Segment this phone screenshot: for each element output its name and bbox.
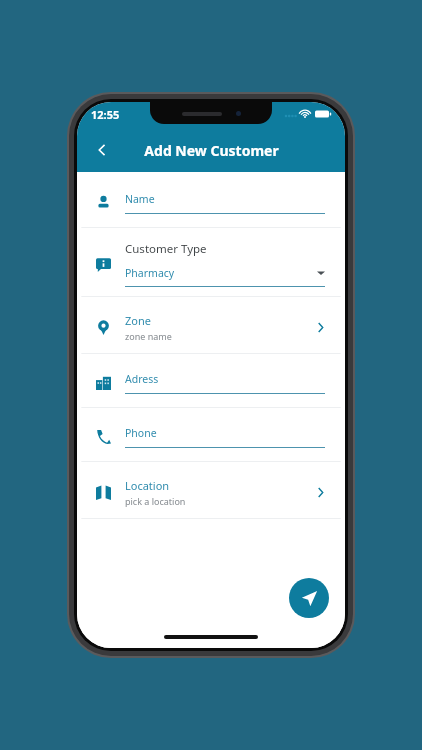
staticText: Pharmacy [125,266,175,280]
button[interactable]: Submit [289,578,329,618]
button[interactable]: Back [85,133,119,167]
staticText: Phone [125,426,157,440]
staticText: 12:55 [91,107,120,122]
button[interactable]: Zone [81,300,341,354]
staticText: Location [125,478,170,493]
staticText: Name [125,192,155,206]
staticText: Add New Customer [144,141,279,160]
staticText: Customer Type [125,241,207,257]
staticText: Zone [125,313,151,328]
button[interactable]: Name [81,177,341,228]
staticText: Adress [125,372,159,386]
staticText: pick a location [125,495,186,507]
staticText: zone name [125,330,172,342]
button[interactable]: Phone [81,411,341,462]
button[interactable]: Location [81,465,341,519]
button[interactable]: Adress [81,357,341,408]
button[interactable]: Customer Type [81,231,341,297]
